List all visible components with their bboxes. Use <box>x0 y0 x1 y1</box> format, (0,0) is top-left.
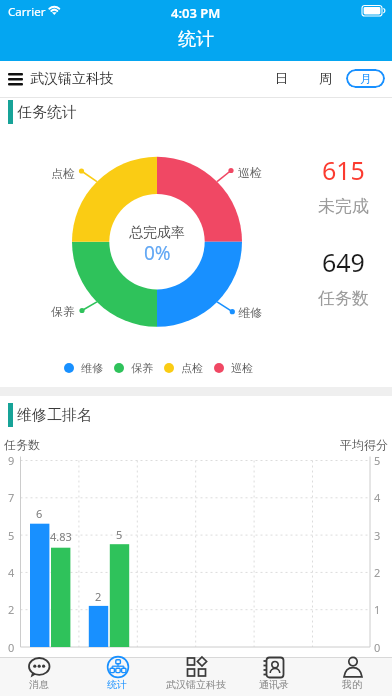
staticText: 4:03 PM <box>171 4 221 18</box>
staticText: 我的 <box>342 678 362 691</box>
button[interactable] <box>2 66 28 92</box>
staticText: 任务数 <box>4 437 40 451</box>
staticText: 3 <box>374 528 381 542</box>
staticText: 月 <box>360 71 372 86</box>
staticText: 4.83 <box>50 529 72 542</box>
staticText: 维修工排名 <box>17 406 92 424</box>
staticText: 武汉镭立科技 <box>30 70 114 87</box>
staticText: Carrier <box>8 4 46 18</box>
staticText: 维修 <box>238 305 262 318</box>
staticText: 日 <box>275 70 288 86</box>
staticText: 平均得分 <box>340 437 388 451</box>
staticText: 点检 <box>51 166 75 179</box>
button[interactable]: 巡检 <box>214 361 253 375</box>
staticText: 5 <box>374 453 381 467</box>
staticText: 0% <box>144 240 171 264</box>
button[interactable]: 日 <box>266 64 296 92</box>
staticText: 9 <box>8 453 15 467</box>
staticText: 巡检 <box>231 361 253 375</box>
button[interactable] <box>78 657 156 696</box>
staticText: 保养 <box>51 304 75 317</box>
staticText: 巡检 <box>238 165 262 178</box>
button[interactable]: 保养 <box>114 361 153 375</box>
staticText: 5 <box>116 527 123 540</box>
staticText: 消息 <box>29 678 49 691</box>
staticText: 0 <box>8 640 15 654</box>
staticText: 1 <box>374 602 381 616</box>
staticText: 4 <box>8 565 15 579</box>
staticText: 周 <box>319 70 332 86</box>
button[interactable]: 月 <box>346 69 385 88</box>
staticText: 4 <box>374 490 381 504</box>
staticText: 任务统计 <box>17 103 77 121</box>
staticText: 未完成 <box>318 196 369 216</box>
button[interactable] <box>314 657 392 696</box>
staticText: 2 <box>95 589 102 602</box>
staticText: 总完成率 <box>129 224 185 239</box>
staticText: 5 <box>8 528 15 542</box>
button[interactable]: 点检 <box>164 361 203 375</box>
staticText: 615 <box>322 153 365 180</box>
staticText: 7 <box>8 490 15 504</box>
staticText: 保养 <box>131 361 153 375</box>
button[interactable] <box>235 657 313 696</box>
staticText: 维修 <box>81 361 103 375</box>
staticText: 2 <box>8 602 15 616</box>
staticText: 任务数 <box>318 288 369 308</box>
staticText: 统计 <box>178 28 214 51</box>
button[interactable]: 维修 <box>64 361 103 375</box>
button[interactable]: 周 <box>310 64 340 92</box>
staticText: 0 <box>374 640 381 654</box>
staticText: 点检 <box>181 361 203 375</box>
button[interactable] <box>0 657 78 696</box>
staticText: 649 <box>322 245 365 272</box>
staticText: 2 <box>374 565 381 579</box>
staticText: 统计 <box>107 678 127 691</box>
staticText: 通讯录 <box>259 678 289 691</box>
button[interactable] <box>157 657 235 696</box>
staticText: 武汉镭立科技 <box>166 678 226 691</box>
staticText: 6 <box>36 506 43 519</box>
